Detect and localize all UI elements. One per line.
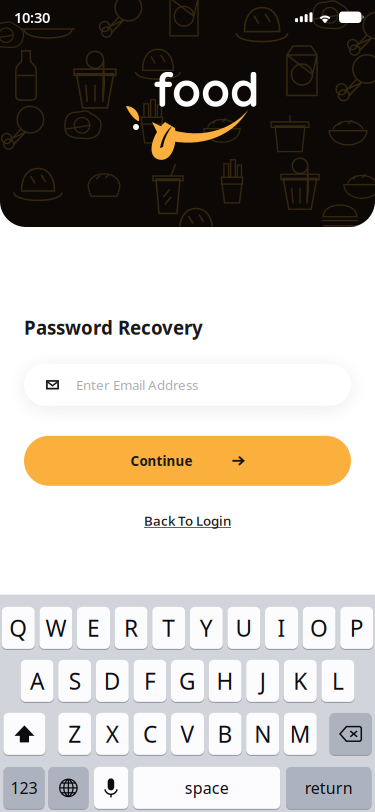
staticText: C (143, 719, 157, 749)
button[interactable]: Next keyboard (48, 767, 88, 809)
button[interactable]: G (171, 660, 204, 702)
staticText: Y (200, 613, 213, 643)
button[interactable]: M (284, 713, 317, 755)
button[interactable]: Enter Email Address (24, 364, 351, 406)
staticText: return (305, 777, 353, 798)
staticText: Back To Login (144, 512, 231, 529)
staticText: H (217, 666, 234, 696)
staticText: T (162, 613, 175, 643)
staticText: V (180, 719, 194, 749)
button[interactable]: P (340, 607, 373, 649)
staticText: F (144, 666, 156, 696)
button[interactable]: Continue (24, 436, 351, 486)
button[interactable]: 123 (4, 767, 44, 809)
staticText: U (235, 613, 252, 643)
staticText: 10:30 (14, 7, 50, 27)
button[interactable]: Delete (330, 713, 372, 755)
staticText: B (218, 719, 233, 749)
staticText: Z (68, 719, 81, 749)
button[interactable]: space (133, 767, 280, 809)
staticText: food (153, 60, 259, 118)
button[interactable]: H (209, 660, 242, 702)
button[interactable]: F (133, 660, 166, 702)
staticText: J (260, 666, 266, 696)
staticText: Continue (130, 452, 192, 470)
staticText: O (310, 613, 328, 643)
button[interactable]: J (246, 660, 279, 702)
button[interactable]: E (77, 607, 110, 649)
staticText: G (179, 666, 196, 696)
staticText: Q (9, 613, 27, 643)
staticText: 123 (10, 777, 37, 798)
button[interactable]: X (96, 713, 129, 755)
button[interactable]: T (152, 607, 185, 649)
staticText: D (104, 666, 121, 696)
button[interactable]: R (115, 607, 148, 649)
button[interactable]: C (133, 713, 166, 755)
button[interactable]: D (96, 660, 129, 702)
button[interactable]: N (246, 713, 279, 755)
staticText: R (124, 613, 138, 643)
button[interactable]: L (321, 660, 354, 702)
staticText: I (277, 613, 285, 643)
button[interactable]: B (209, 713, 242, 755)
staticText: space (185, 777, 229, 798)
button[interactable]: Back To Login (24, 512, 351, 529)
button[interactable]: O (303, 607, 336, 649)
staticText: X (106, 719, 119, 749)
button[interactable]: V (171, 713, 204, 755)
staticText: M (290, 719, 311, 749)
button[interactable]: A (21, 660, 54, 702)
staticText: K (293, 666, 307, 696)
button[interactable]: S (58, 660, 91, 702)
staticText: W (45, 613, 66, 643)
staticText: L (332, 666, 344, 696)
staticText: P (350, 613, 364, 643)
button[interactable]: return (286, 767, 371, 809)
staticText: A (30, 666, 44, 696)
button[interactable]: K (284, 660, 317, 702)
staticText: N (254, 719, 271, 749)
staticText: E (87, 613, 100, 643)
button[interactable]: Y (190, 607, 223, 649)
button[interactable]: W (39, 607, 72, 649)
button[interactable]: U (227, 607, 260, 649)
staticText: S (69, 666, 81, 696)
button[interactable]: Shift (3, 713, 45, 755)
staticText: Enter Email Address (76, 376, 198, 394)
button[interactable]: Z (58, 713, 91, 755)
button[interactable]: Q (2, 607, 35, 649)
button[interactable]: Dictation (94, 767, 128, 809)
staticText: Password Recovery (24, 315, 203, 340)
button[interactable]: I (265, 607, 298, 649)
